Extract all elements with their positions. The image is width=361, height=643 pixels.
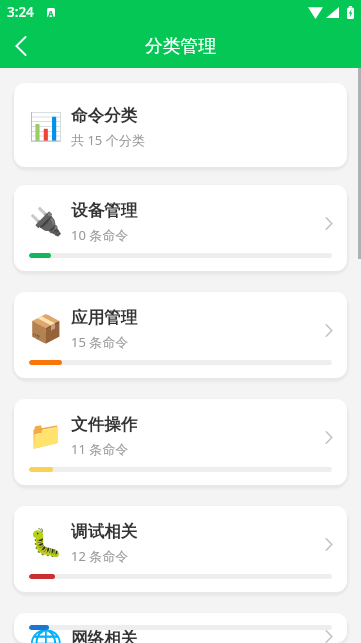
staticText: 分类管理	[145, 35, 217, 57]
button[interactable]: 🐛	[14, 506, 347, 592]
staticText: 📦	[29, 313, 63, 345]
staticText: 3:24	[7, 3, 34, 21]
staticText: 调试相关	[71, 521, 138, 542]
staticText: 15 条命令	[71, 333, 129, 351]
staticText: 网络相关	[71, 628, 138, 643]
staticText: 12 条命令	[71, 547, 129, 565]
staticText: 应用管理	[71, 307, 138, 328]
staticText: 📊	[29, 111, 63, 143]
button[interactable]: 📊	[14, 83, 347, 167]
staticText: 11 条命令	[71, 440, 129, 458]
staticText: 共 15 个分类	[71, 131, 145, 149]
staticText: 文件操作	[71, 414, 138, 435]
button[interactable]: 🌐	[14, 613, 347, 643]
button[interactable]: 📦	[14, 292, 347, 378]
staticText: 🔌	[29, 206, 63, 238]
staticText: 🐛	[29, 527, 63, 559]
staticText: 设备管理	[71, 200, 138, 221]
staticText: 命令分类	[71, 105, 138, 126]
staticText: 📁	[29, 420, 63, 452]
button[interactable]: 📁	[14, 399, 347, 485]
staticText: 🌐	[29, 628, 63, 643]
button[interactable]: Back	[0, 24, 44, 68]
staticText: A	[48, 8, 54, 17]
button[interactable]: 🔌	[14, 185, 347, 271]
staticText: 10 条命令	[71, 226, 129, 244]
